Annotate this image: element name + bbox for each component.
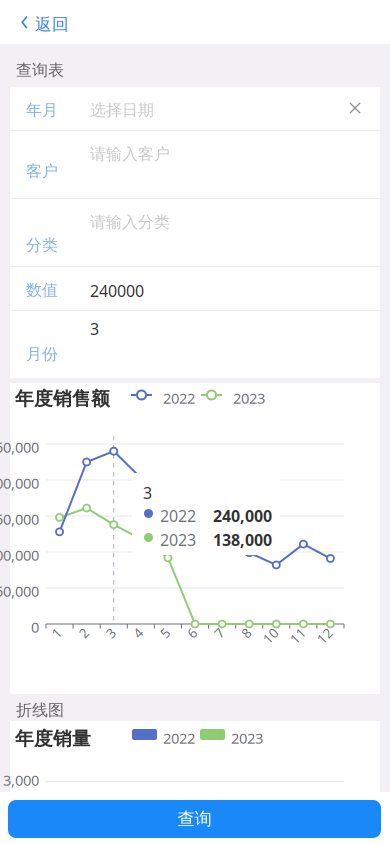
staticText: 2022 bbox=[160, 505, 196, 527]
staticText: 2023 bbox=[160, 529, 196, 551]
staticText: 240,000 bbox=[213, 505, 272, 527]
staticText: 1 bbox=[54, 628, 62, 646]
staticText: 7 bbox=[217, 628, 225, 646]
staticText: 请输入分类 bbox=[90, 212, 170, 232]
staticText: 年度销售额 bbox=[15, 387, 110, 410]
staticText: 返回 bbox=[35, 14, 69, 35]
button[interactable]: 年月 bbox=[10, 87, 380, 130]
staticText: 5 bbox=[163, 628, 171, 646]
staticText: 250,000 bbox=[0, 437, 39, 457]
staticText: 2023 bbox=[231, 728, 263, 748]
staticText: 2 bbox=[82, 628, 90, 646]
staticText: 0 bbox=[31, 617, 39, 637]
staticText: 2023 bbox=[233, 388, 265, 408]
staticText: 选择日期 bbox=[90, 100, 154, 120]
button[interactable]: 返回 bbox=[0, 0, 80, 44]
staticText: 4 bbox=[136, 628, 144, 646]
button[interactable]: 查询 bbox=[0, 792, 373, 830]
staticText: 6 bbox=[190, 628, 198, 646]
staticText: 年度销量 bbox=[15, 727, 91, 750]
button[interactable]: 客户 bbox=[10, 131, 380, 198]
staticText: 2022 bbox=[163, 388, 195, 408]
staticText: 12 bbox=[317, 628, 333, 646]
staticText: 138,000 bbox=[213, 529, 272, 551]
staticText: 年月 bbox=[26, 100, 58, 120]
staticText: 查询 bbox=[177, 808, 211, 830]
staticText: 3 bbox=[109, 628, 117, 646]
button[interactable]: 分类 bbox=[10, 199, 380, 266]
staticText: 数值 bbox=[26, 280, 58, 300]
staticText: 2022 bbox=[163, 728, 195, 748]
staticText: 11 bbox=[290, 628, 306, 646]
staticText: 3 bbox=[90, 318, 99, 340]
staticText: 150,000 bbox=[0, 509, 39, 529]
staticText: 请输入客户 bbox=[90, 144, 170, 164]
staticText: 月份 bbox=[26, 344, 58, 364]
staticText: 8 bbox=[244, 628, 252, 646]
staticText: 100,000 bbox=[0, 545, 39, 565]
staticText: 10 bbox=[263, 628, 279, 646]
staticText: 分类 bbox=[26, 235, 58, 255]
staticText: 客户 bbox=[26, 161, 58, 181]
staticText: 200,000 bbox=[0, 473, 39, 493]
button[interactable]: 月份 bbox=[10, 311, 380, 378]
staticText: 50,000 bbox=[0, 581, 39, 601]
staticText: 3 bbox=[143, 482, 152, 504]
staticText: 3,000 bbox=[3, 770, 39, 790]
staticText: 240000 bbox=[90, 280, 144, 302]
staticText: 查询表 bbox=[16, 60, 64, 80]
staticText: 折线图 bbox=[16, 700, 64, 720]
button[interactable]: 数值 bbox=[10, 267, 380, 310]
